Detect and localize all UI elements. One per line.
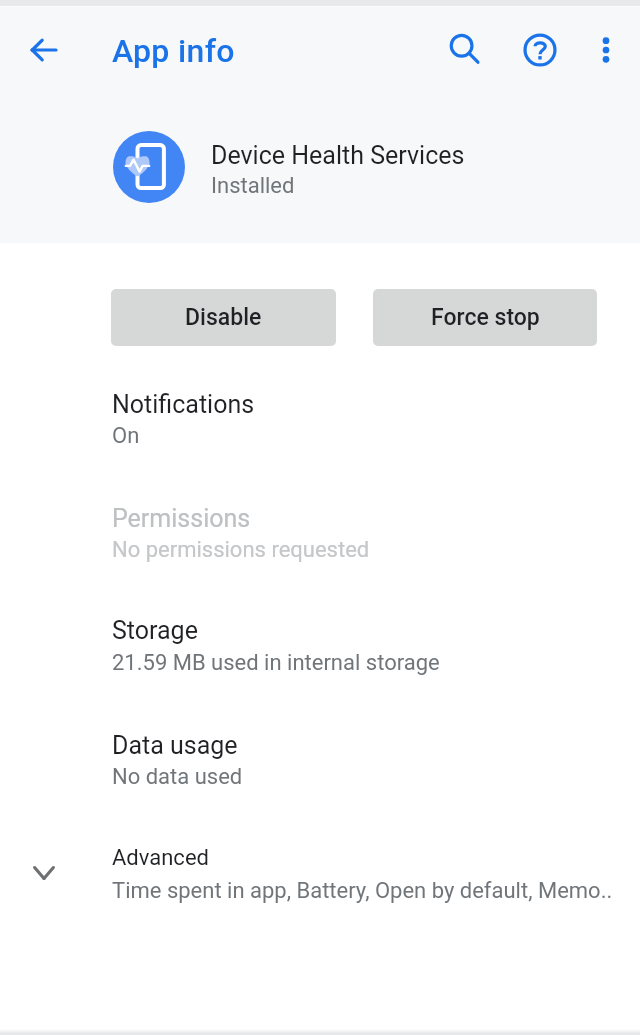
staticText: Installed (211, 173, 295, 199)
button[interactable] (0, 813, 640, 927)
button[interactable]: Expand Advanced (10, 839, 78, 907)
button[interactable]: Force stop (373, 289, 597, 346)
staticText: No permissions requested (112, 537, 370, 563)
staticText: Time spent in app, Battery, Open by defa… (112, 878, 613, 904)
staticText: 21.59 MB used in internal storage (112, 650, 440, 676)
button[interactable] (0, 472, 640, 586)
button[interactable] (0, 699, 640, 813)
staticText: Advanced (112, 845, 209, 871)
staticText: App info (112, 32, 235, 70)
staticText: Storage (112, 616, 198, 645)
staticText: Force stop (431, 304, 540, 331)
staticText: Permissions (112, 504, 251, 533)
button[interactable] (0, 585, 640, 699)
button[interactable]: Search (431, 16, 499, 84)
staticText: Disable (185, 304, 262, 331)
button[interactable]: Back (10, 16, 78, 84)
button[interactable] (0, 358, 640, 472)
button[interactable]: Disable (111, 289, 336, 346)
staticText: Notifications (112, 390, 255, 419)
staticText: Device Health Services (211, 141, 465, 170)
staticText: On (112, 423, 140, 449)
button[interactable]: More options (572, 16, 640, 84)
button[interactable]: Help (506, 16, 574, 84)
staticText: Data usage (112, 731, 238, 760)
staticText: No data used (112, 764, 243, 790)
